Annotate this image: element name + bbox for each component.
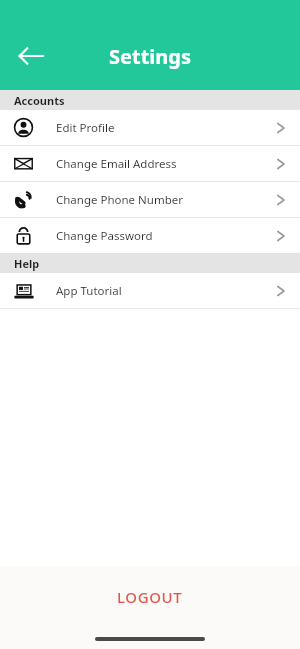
staticText: App Tutorial [56, 283, 122, 299]
staticText: Settings [109, 43, 191, 70]
button[interactable]: Edit Profile [0, 110, 300, 145]
staticText: Edit Profile [56, 120, 115, 136]
staticText: Change Email Address [56, 156, 177, 172]
staticText: Change Password [56, 228, 153, 244]
button[interactable]: Change Password [0, 218, 300, 253]
staticText: Change Phone Number [56, 192, 183, 208]
staticText: Help [14, 256, 40, 271]
button[interactable]: LOGOUT [0, 566, 300, 649]
button[interactable]: App Tutorial [0, 273, 300, 308]
button[interactable]: Change Phone Number [0, 182, 300, 217]
staticText: LOGOUT [117, 587, 183, 607]
button[interactable]: Back [14, 39, 48, 73]
button[interactable]: Change Email Address [0, 146, 300, 181]
staticText: Accounts [14, 93, 65, 108]
